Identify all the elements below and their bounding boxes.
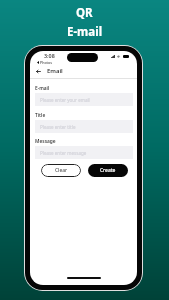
staticText: Please enter title bbox=[40, 124, 76, 130]
staticText: Create bbox=[100, 167, 116, 174]
button[interactable]: Create bbox=[88, 164, 128, 177]
staticText: E-mail bbox=[67, 24, 103, 40]
staticText: Please enter your email bbox=[40, 97, 90, 103]
staticText: QR bbox=[76, 5, 93, 21]
staticText: Please enter message bbox=[40, 150, 87, 156]
staticText: Title bbox=[35, 112, 46, 119]
staticText: Message bbox=[35, 138, 56, 145]
other: Back bbox=[36, 69, 41, 74]
staticText: Email bbox=[47, 67, 63, 75]
button[interactable]: Clear bbox=[41, 164, 81, 177]
staticText: 3:08 bbox=[44, 52, 55, 59]
staticText: E-mail bbox=[35, 85, 50, 92]
staticText: Photos bbox=[40, 60, 52, 65]
button[interactable]: Back bbox=[30, 65, 137, 77]
staticText: Clear bbox=[55, 167, 68, 174]
